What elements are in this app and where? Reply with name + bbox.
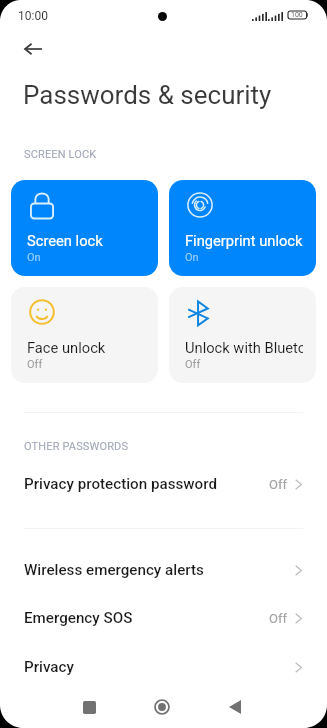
button[interactable]: Fingerprint unlock (169, 180, 316, 276)
staticText: Off (269, 611, 287, 626)
button[interactable]: Privacy (0, 643, 327, 691)
button[interactable]: Unlock with Bluetooth (169, 287, 316, 383)
staticText: SCREEN LOCK (24, 148, 97, 161)
button[interactable]: Screen lock (11, 180, 158, 276)
button[interactable]: Home (140, 686, 184, 728)
staticText: OTHER PASSWORDS (24, 440, 129, 453)
button[interactable]: Wireless emergency alerts (0, 546, 327, 594)
staticText: On (27, 251, 41, 264)
staticText: Fingerprint unlock (185, 232, 303, 249)
staticText: On (185, 251, 199, 264)
staticText: Off (269, 477, 287, 492)
button[interactable]: Emergency SOS (0, 594, 327, 642)
staticText: Privacy (24, 658, 74, 676)
staticText: 10:00 (18, 9, 48, 23)
button[interactable]: Face unlock (11, 287, 158, 383)
button[interactable]: Back (213, 686, 257, 728)
staticText: Off (27, 358, 43, 371)
button[interactable]: Privacy protection password (0, 460, 327, 508)
staticText: Unlock with Bluetooth (185, 339, 303, 356)
staticText: Off (185, 358, 201, 371)
button[interactable]: Back (17, 33, 49, 65)
button[interactable]: Recent apps (67, 686, 111, 728)
staticText: Wireless emergency alerts (24, 561, 204, 579)
staticText: Emergency SOS (24, 609, 133, 627)
staticText: Screen lock (27, 232, 145, 249)
staticText: Privacy protection password (24, 475, 217, 493)
staticText: 100 (291, 11, 303, 19)
staticText: Face unlock (27, 339, 145, 356)
staticText: Passwords & security (23, 80, 272, 110)
